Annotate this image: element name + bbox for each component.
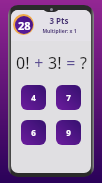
staticText: 3 Pts bbox=[49, 15, 69, 26]
staticText: = bbox=[62, 52, 80, 74]
button[interactable]: Score 28 bbox=[13, 14, 34, 35]
staticText: 28 bbox=[18, 18, 31, 33]
staticText: 0! bbox=[16, 52, 30, 74]
button[interactable]: 6 bbox=[21, 120, 46, 145]
button[interactable]: 9 bbox=[56, 120, 81, 145]
button[interactable]: 4 bbox=[21, 85, 46, 110]
staticText: 7 bbox=[66, 92, 71, 103]
staticText: 3! bbox=[48, 52, 62, 74]
staticText: 4 bbox=[31, 92, 36, 103]
staticText: 9 bbox=[66, 127, 71, 138]
staticText: Multiplier: x 1 bbox=[42, 28, 77, 35]
staticText: 6 bbox=[31, 127, 36, 138]
button[interactable]: 7 bbox=[56, 85, 81, 110]
staticText: ? bbox=[80, 52, 87, 74]
staticText: + bbox=[30, 52, 48, 74]
